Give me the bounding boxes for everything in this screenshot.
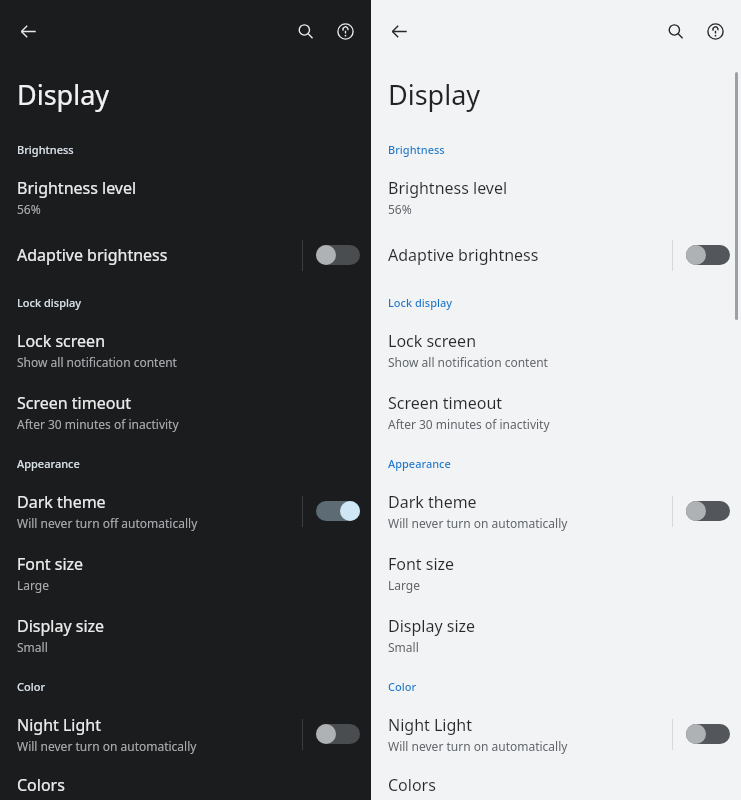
staticText: Display [388, 76, 481, 113]
staticText: Night Light [17, 714, 101, 736]
button[interactable]: Colors [371, 770, 741, 800]
staticText: Small [388, 639, 419, 655]
staticText: Colors [388, 774, 436, 796]
staticText: Brightness [17, 142, 74, 157]
staticText: Brightness level [17, 177, 137, 199]
staticText: Large [17, 577, 50, 593]
button[interactable] [685, 496, 731, 526]
staticText: Display size [17, 615, 105, 637]
button[interactable]: Colors [0, 770, 371, 800]
staticText: Show all notification content [388, 354, 548, 370]
button[interactable]: Adaptive brightness [0, 233, 371, 277]
button[interactable]: Screen timeout [0, 386, 371, 438]
staticText: Adaptive brightness [17, 244, 168, 266]
staticText: Appearance [17, 456, 80, 471]
button[interactable]: Back [379, 11, 419, 51]
button[interactable]: Screen timeout [371, 386, 741, 438]
staticText: Font size [388, 553, 455, 575]
button[interactable]: Dark theme [371, 485, 741, 537]
staticText: Show all notification content [17, 354, 177, 370]
staticText: After 30 minutes of inactivity [388, 416, 550, 432]
button[interactable] [685, 240, 731, 270]
staticText: 56% [388, 201, 412, 217]
button[interactable]: Night Light [371, 708, 741, 760]
staticText: Screen timeout [17, 392, 132, 414]
button[interactable] [315, 719, 361, 749]
staticText: Colors [17, 774, 65, 796]
button[interactable]: Display size [0, 609, 371, 661]
staticText: Will never turn on automatically [388, 515, 568, 531]
staticText: Night Light [388, 714, 472, 736]
staticText: Brightness [388, 142, 445, 157]
button[interactable]: Night Light [0, 708, 371, 760]
button[interactable]: Help [325, 11, 365, 51]
staticText: Display [17, 76, 110, 113]
staticText: Display size [388, 615, 476, 637]
staticText: Appearance [388, 456, 451, 471]
button[interactable] [315, 240, 361, 270]
staticText: Dark theme [17, 491, 106, 513]
button[interactable]: Lock screen [0, 324, 371, 376]
staticText: Lock display [388, 295, 453, 310]
staticText: Lock screen [388, 330, 477, 352]
button[interactable] [685, 719, 731, 749]
staticText: Will never turn on automatically [388, 738, 568, 754]
staticText: Large [388, 577, 421, 593]
button[interactable]: Search [655, 11, 695, 51]
button[interactable]: Adaptive brightness [371, 233, 741, 277]
staticText: 56% [17, 201, 41, 217]
staticText: After 30 minutes of inactivity [17, 416, 179, 432]
staticText: Will never turn on automatically [17, 738, 197, 754]
staticText: Brightness level [388, 177, 508, 199]
button[interactable]: Lock screen [371, 324, 741, 376]
staticText: Color [17, 679, 46, 694]
button[interactable]: Back [8, 11, 48, 51]
staticText: Dark theme [388, 491, 477, 513]
staticText: Adaptive brightness [388, 244, 539, 266]
button[interactable]: Font size [0, 547, 371, 599]
staticText: Screen timeout [388, 392, 503, 414]
button[interactable]: Font size [371, 547, 741, 599]
staticText: Lock display [17, 295, 82, 310]
staticText: Font size [17, 553, 84, 575]
button[interactable]: Brightness level [0, 171, 371, 223]
staticText: Lock screen [17, 330, 106, 352]
staticText: Color [388, 679, 417, 694]
button[interactable]: Brightness level [371, 171, 741, 223]
staticText: Small [17, 639, 48, 655]
staticText: Will never turn off automatically [17, 515, 198, 531]
button[interactable]: Help [695, 11, 735, 51]
button[interactable]: Display size [371, 609, 741, 661]
button[interactable]: Search [285, 11, 325, 51]
button[interactable] [315, 496, 361, 526]
button[interactable]: Dark theme [0, 485, 371, 537]
